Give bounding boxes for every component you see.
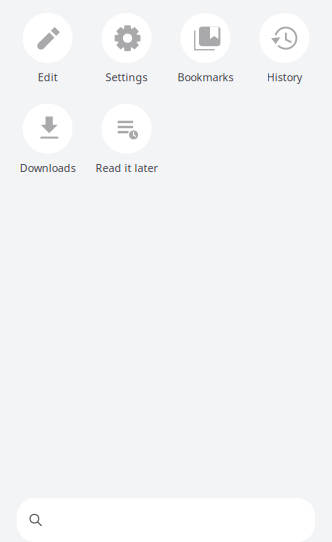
staticText: History (267, 70, 302, 84)
button[interactable]: Downloads (8, 104, 87, 175)
button[interactable]: Bookmarks (166, 13, 245, 84)
staticText: Read it later (95, 161, 157, 175)
staticText: Settings (105, 70, 147, 84)
staticText: Edit (38, 70, 58, 84)
staticText: Bookmarks (177, 70, 233, 84)
button[interactable]: Read it later (87, 104, 166, 175)
button[interactable]: Search (17, 498, 315, 542)
button[interactable]: Edit (8, 13, 87, 84)
button[interactable]: History (245, 13, 324, 84)
button[interactable]: Settings (87, 13, 166, 84)
staticText: Downloads (20, 161, 76, 175)
